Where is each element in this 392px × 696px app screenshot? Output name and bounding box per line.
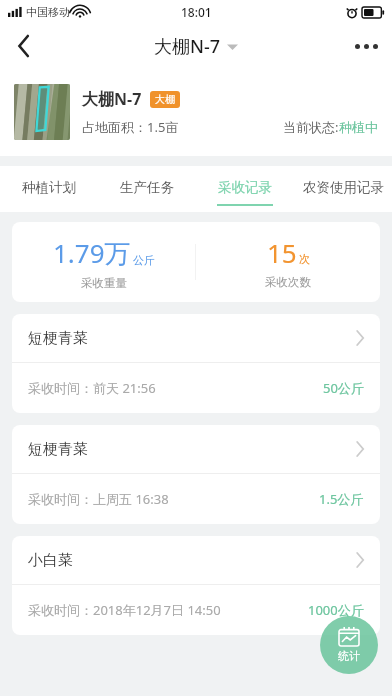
- staticText: 大棚N-7: [82, 88, 142, 110]
- button[interactable]: 1.79万: [12, 222, 380, 302]
- button[interactable]: 农资使用记录: [294, 166, 392, 212]
- staticText: 18:01: [181, 4, 212, 20]
- staticText: 短梗青菜: [28, 440, 88, 459]
- staticText: 种植中: [339, 119, 378, 135]
- button[interactable]: 大棚N-7: [0, 68, 392, 156]
- staticText: 生产任务: [120, 179, 174, 196]
- button[interactable]: 采收记录: [196, 166, 294, 212]
- staticText: 大棚N-7: [154, 34, 221, 59]
- staticText: 1000公斤: [308, 601, 364, 619]
- staticText: 农资使用记录: [303, 179, 384, 196]
- staticText: 中国移动: [26, 5, 70, 19]
- staticText: 采收时间：前天 21:56: [28, 379, 156, 397]
- staticText: 短梗青菜: [28, 329, 88, 348]
- staticText: 公斤: [133, 253, 155, 267]
- staticText: 种植计划: [22, 179, 76, 196]
- staticText: 1.5公斤: [319, 490, 364, 508]
- button[interactable]: 短梗青菜: [12, 314, 380, 413]
- button[interactable]: 种植计划: [0, 166, 98, 212]
- button[interactable]: More options: [340, 24, 392, 68]
- button[interactable]: 短梗青菜: [12, 425, 380, 524]
- staticText: 15: [267, 235, 297, 270]
- staticText: 1.79万: [53, 235, 131, 271]
- staticText: 当前状态:: [283, 118, 339, 136]
- staticText: 50公斤: [323, 379, 364, 397]
- staticText: 小白菜: [28, 551, 73, 570]
- button[interactable]: 小白菜: [12, 536, 380, 635]
- staticText: 统计: [338, 649, 360, 663]
- button[interactable]: 生产任务: [98, 166, 196, 212]
- button[interactable]: 大棚N-7: [154, 34, 238, 59]
- staticText: 占地面积：1.5亩: [82, 118, 179, 136]
- staticText: 采收时间：2018年12月7日 14:50: [28, 601, 221, 619]
- button[interactable]: Back: [0, 24, 48, 68]
- staticText: 采收时间：上周五 16:38: [28, 490, 169, 508]
- button[interactable]: 统计 Statistics: [320, 616, 378, 674]
- staticText: 次: [299, 252, 310, 266]
- staticText: 大棚: [155, 93, 175, 106]
- staticText: 采收次数: [265, 275, 311, 289]
- staticText: 采收记录: [218, 179, 272, 196]
- staticText: 采收重量: [81, 276, 127, 290]
